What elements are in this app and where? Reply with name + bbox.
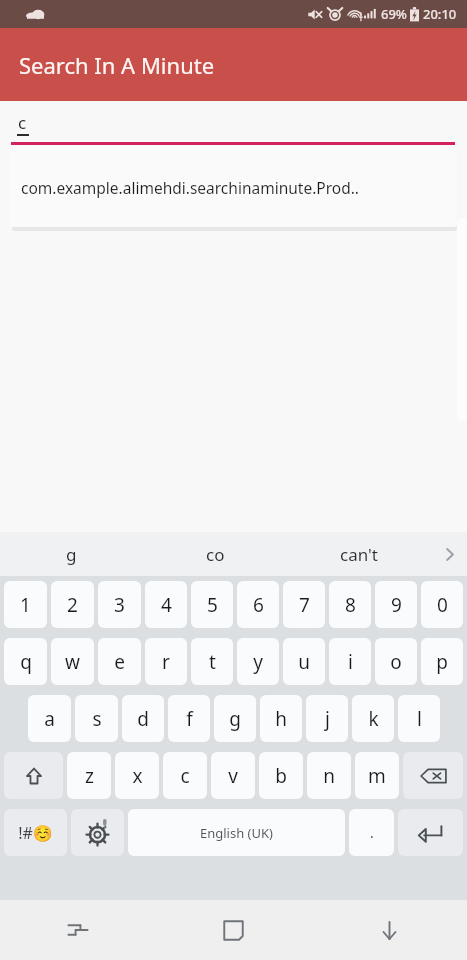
staticText: a	[44, 706, 55, 732]
button[interactable]: Enter	[398, 809, 463, 856]
button[interactable]: c	[163, 752, 207, 799]
staticText: can't	[340, 543, 378, 566]
staticText: 6	[253, 592, 264, 618]
button[interactable]: 7	[283, 581, 325, 628]
button[interactable]: 5	[191, 581, 233, 628]
staticText: d	[137, 706, 149, 732]
staticText: 20:10	[423, 5, 457, 23]
staticText: f	[186, 706, 193, 732]
button[interactable]: p	[421, 638, 463, 685]
button[interactable]: y	[237, 638, 279, 685]
button[interactable]: Hide keyboard	[311, 900, 467, 960]
staticText: Search In A Minute	[19, 50, 215, 80]
button[interactable]: Home	[155, 900, 311, 960]
button[interactable]: 2	[51, 581, 94, 628]
button[interactable]: o	[375, 638, 417, 685]
button[interactable]: .	[349, 809, 394, 856]
button[interactable]: co	[143, 532, 287, 576]
staticText: e	[114, 649, 125, 675]
staticText: w	[65, 649, 80, 675]
staticText: 2	[67, 592, 78, 618]
button[interactable]: 4	[145, 581, 187, 628]
button[interactable]: 8	[329, 581, 371, 628]
staticText: t	[209, 649, 216, 675]
button[interactable]: Backspace	[403, 752, 463, 799]
staticText: y	[253, 649, 263, 675]
staticText: x	[132, 763, 143, 789]
button[interactable]: s	[75, 695, 118, 742]
button[interactable]: 3	[98, 581, 141, 628]
button[interactable]: can't	[287, 532, 431, 576]
button[interactable]: 0	[421, 581, 463, 628]
staticText: k	[368, 706, 379, 732]
button[interactable]: x	[115, 752, 159, 799]
staticText: o	[390, 649, 402, 675]
button[interactable]: 1	[4, 581, 47, 628]
staticText: English (UK)	[200, 824, 273, 842]
button[interactable]: Shift	[4, 752, 63, 799]
button[interactable]: a	[28, 695, 71, 742]
staticText: z	[85, 763, 94, 789]
staticText: s	[92, 706, 102, 732]
button[interactable]: Recents	[0, 900, 155, 960]
staticText: c	[18, 111, 27, 134]
button[interactable]: q	[4, 638, 47, 685]
button[interactable]: e	[98, 638, 141, 685]
button[interactable]: g	[0, 532, 143, 576]
button[interactable]: n	[307, 752, 351, 799]
staticText: 5	[207, 592, 218, 618]
staticText: j	[325, 706, 330, 732]
staticText: 8	[345, 592, 356, 618]
staticText: b	[275, 763, 287, 789]
button[interactable]: 9	[375, 581, 417, 628]
staticText: n	[323, 763, 335, 789]
button[interactable]: h	[260, 695, 302, 742]
staticText: 4	[161, 592, 172, 618]
button[interactable]: v	[211, 752, 255, 799]
staticText: 0	[437, 592, 448, 618]
staticText: i	[348, 649, 353, 675]
button[interactable]: u	[283, 638, 325, 685]
button[interactable]: l	[398, 695, 440, 742]
staticText: l	[417, 706, 422, 732]
staticText: u	[298, 649, 310, 675]
staticText: q	[20, 649, 32, 675]
button[interactable]: k	[352, 695, 394, 742]
button[interactable]: English (UK)	[128, 809, 345, 856]
staticText: g	[229, 706, 241, 732]
staticText: v	[228, 763, 238, 789]
button[interactable]: t	[191, 638, 233, 685]
button[interactable]: m	[355, 752, 399, 799]
button[interactable]: r	[145, 638, 187, 685]
button[interactable]: Settings	[71, 809, 124, 856]
staticText: co	[206, 543, 225, 566]
staticText: g	[66, 543, 77, 566]
staticText: !#☺	[18, 822, 53, 844]
button[interactable]: 6	[237, 581, 279, 628]
button[interactable]: j	[306, 695, 348, 742]
staticText: 3	[114, 592, 125, 618]
staticText: 1	[20, 592, 31, 618]
staticText: 69%	[381, 5, 407, 23]
button[interactable]: w	[51, 638, 94, 685]
button[interactable]: g	[214, 695, 256, 742]
staticText: com.example.alimehdi.searchinaminute.Pro…	[21, 177, 359, 198]
staticText: r	[162, 649, 170, 675]
button[interactable]: f	[168, 695, 210, 742]
button[interactable]: i	[329, 638, 371, 685]
staticText: c	[180, 763, 190, 789]
staticText: h	[275, 706, 287, 732]
staticText: p	[436, 649, 448, 675]
staticText: 7	[299, 592, 310, 618]
staticText: .	[370, 823, 374, 842]
button[interactable]: !#☺	[4, 809, 67, 856]
button[interactable]: d	[122, 695, 164, 742]
staticText: 9	[391, 592, 402, 618]
button[interactable]: z	[67, 752, 111, 799]
button[interactable]: More suggestions	[431, 532, 467, 576]
button[interactable]: b	[259, 752, 303, 799]
staticText: m	[368, 763, 386, 789]
button[interactable]: com.example.alimehdi.searchinaminute.Pro…	[10, 147, 457, 227]
